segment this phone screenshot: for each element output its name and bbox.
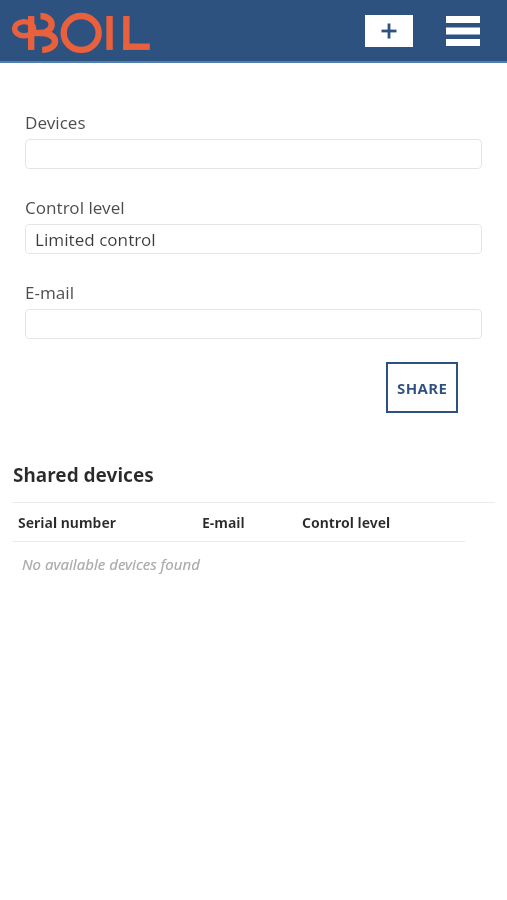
button[interactable] xyxy=(25,309,482,339)
staticText: Devices xyxy=(25,111,86,134)
button[interactable]: Add device xyxy=(365,15,413,47)
button[interactable]: BOIL home xyxy=(14,9,154,53)
staticText: Limited control xyxy=(35,228,156,251)
button[interactable] xyxy=(25,139,482,169)
staticText: No available devices found xyxy=(22,554,200,574)
staticText: Control level xyxy=(25,196,125,219)
staticText: SHARE xyxy=(397,378,448,398)
button[interactable]: Limited control xyxy=(25,224,482,254)
button[interactable]: Menu xyxy=(445,14,481,48)
staticText: Serial number xyxy=(18,513,117,532)
staticText: E-mail xyxy=(25,281,75,304)
button[interactable]: SHARE xyxy=(386,362,458,413)
staticText: E-mail xyxy=(202,513,245,532)
staticText: Control level xyxy=(302,513,391,532)
staticText: Shared devices xyxy=(13,462,154,488)
